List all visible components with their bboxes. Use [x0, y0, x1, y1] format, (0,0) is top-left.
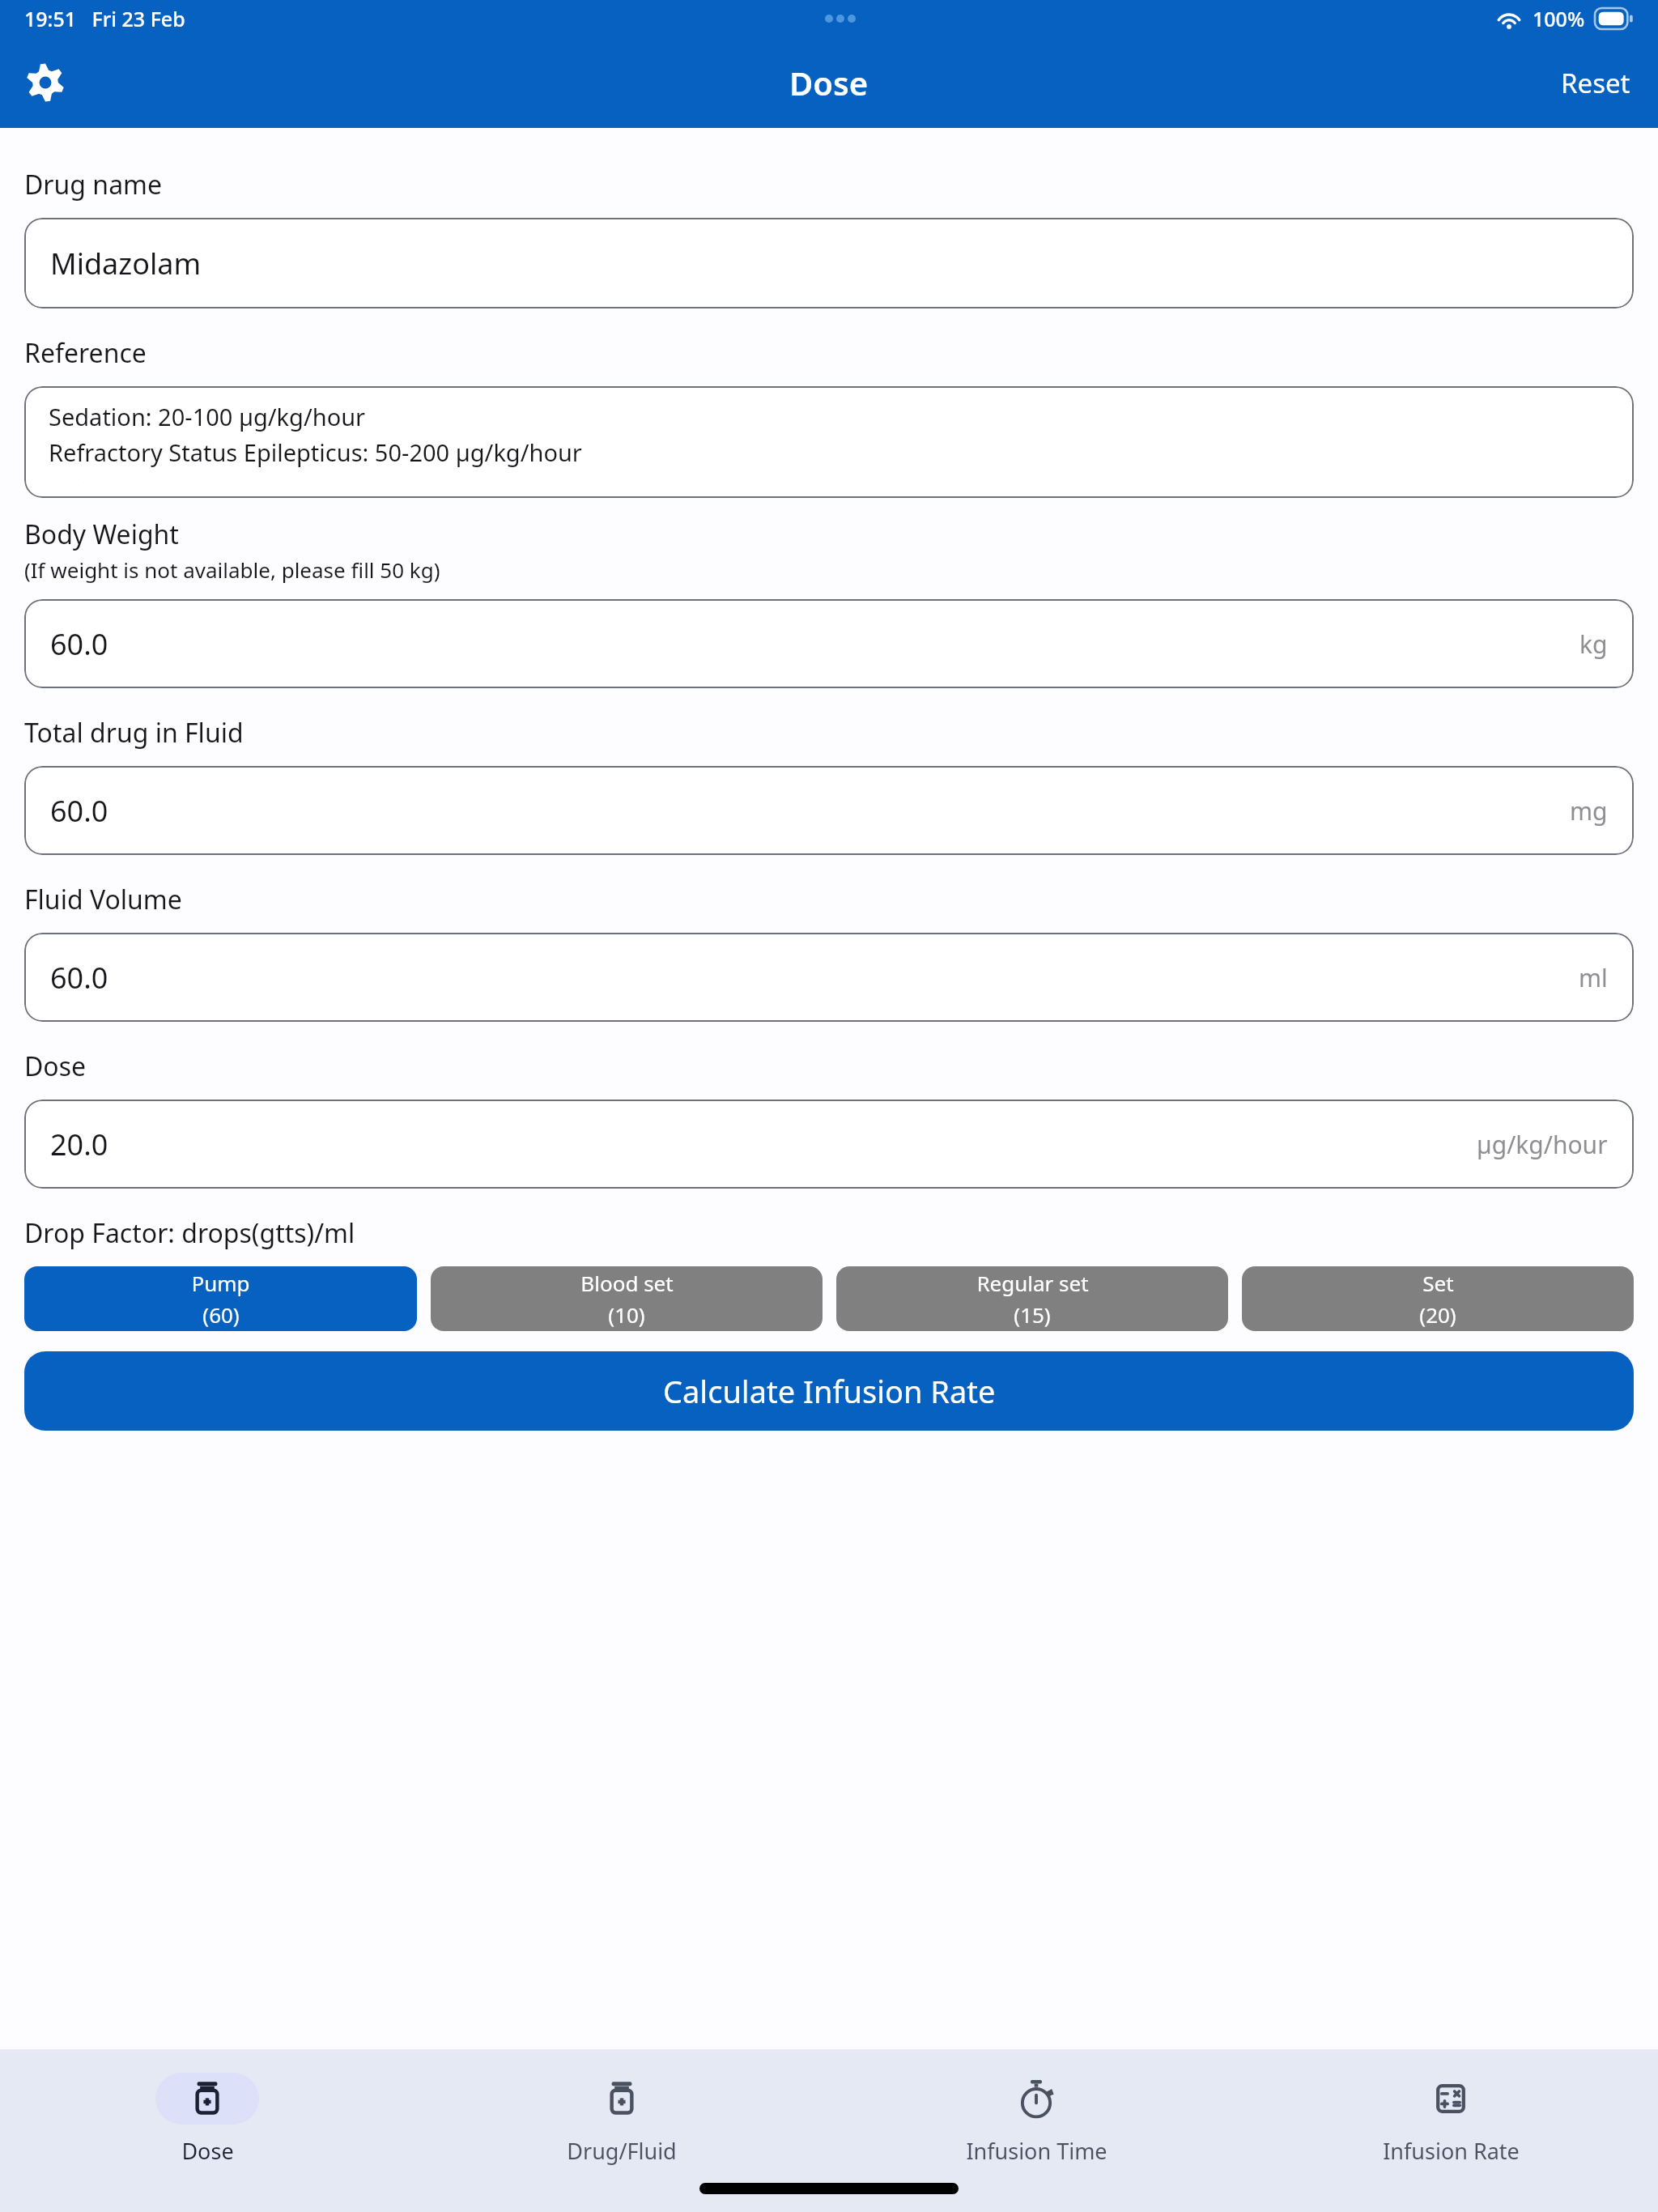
button[interactable]: Pump [24, 1266, 417, 1331]
staticText: Drug name [24, 167, 163, 202]
staticText: mg [1570, 794, 1608, 827]
staticText: Pump [191, 1269, 250, 1297]
staticText: 20.0 [50, 1125, 108, 1164]
staticText: Midazolam [50, 244, 202, 283]
staticText: Calculate Infusion Rate [663, 1370, 996, 1412]
button[interactable]: Reset [1533, 50, 1658, 116]
button[interactable]: Infusion Time [829, 2049, 1243, 2171]
button[interactable]: 60.0 [24, 766, 1634, 855]
button[interactable]: Regular set [836, 1266, 1228, 1331]
button[interactable]: Infusion Rate [1243, 2049, 1658, 2171]
staticText: µg/kg/hour [1477, 1128, 1608, 1161]
staticText: Total drug in Fluid [24, 715, 244, 751]
staticText: Drop Factor: drops(gtts)/ml [24, 1215, 355, 1251]
staticText: Refractory Status Epilepticus: 50-200 µg… [49, 436, 582, 468]
button[interactable]: Calculate Infusion Rate [24, 1351, 1634, 1431]
staticText: Regular set [976, 1269, 1089, 1297]
staticText: Sedation: 20-100 µg/kg/hour [49, 401, 366, 432]
staticText: (15) [1014, 1300, 1051, 1329]
staticText: Set [1422, 1269, 1454, 1297]
staticText: (60) [202, 1300, 240, 1329]
staticText: Dose [181, 2136, 234, 2166]
staticText: 60.0 [50, 624, 108, 664]
staticText: (20) [1419, 1300, 1456, 1329]
staticText: Blood set [580, 1269, 674, 1297]
staticText: kg [1579, 627, 1608, 661]
staticText: Fluid Volume [24, 882, 182, 917]
staticText: Body Weight [24, 517, 179, 552]
staticText: Infusion Time [966, 2136, 1107, 2166]
staticText: Reference [24, 335, 147, 371]
button[interactable]: 20.0 [24, 1100, 1634, 1189]
button[interactable]: Blood set [431, 1266, 823, 1331]
staticText: (10) [608, 1300, 645, 1329]
staticText: 60.0 [50, 958, 108, 998]
button[interactable]: Drug/Fluid [414, 2049, 829, 2171]
staticText: ml [1579, 961, 1608, 994]
button[interactable]: 60.0 [24, 599, 1634, 688]
staticText: Drug/Fluid [567, 2136, 677, 2166]
staticText: Dose [24, 1049, 87, 1084]
button[interactable]: Midazolam [24, 218, 1634, 308]
staticText: Infusion Rate [1383, 2136, 1520, 2166]
staticText: Reset [1561, 65, 1630, 101]
button[interactable]: Settings [11, 49, 79, 117]
staticText: 60.0 [50, 791, 108, 831]
staticText: 19:51 Fri 23 Feb [24, 5, 185, 32]
button[interactable]: 60.0 [24, 933, 1634, 1022]
button[interactable]: Set [1242, 1266, 1634, 1331]
staticText: 100% [1533, 5, 1585, 32]
button[interactable]: Dose [0, 2049, 414, 2171]
staticText: Dose [789, 61, 869, 104]
staticText: (If weight is not available, please fill… [24, 555, 440, 584]
